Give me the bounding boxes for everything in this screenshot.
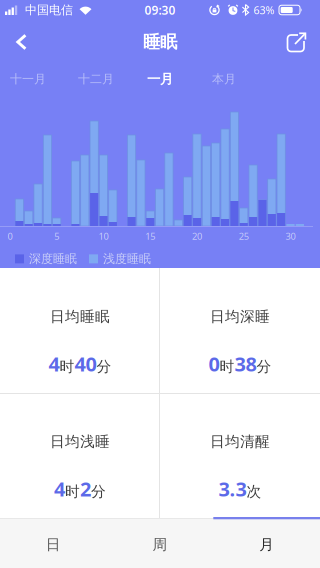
staticText: 10 [98,230,108,242]
staticText: 09:30 [144,2,175,18]
button[interactable]: Share [287,20,320,63]
staticText: 日均浅睡 [50,432,110,450]
staticText: 日 [46,535,61,553]
staticText: 4 [48,350,59,377]
staticText: 分 [91,482,106,500]
staticText: 日均睡眠 [50,307,110,325]
staticText: 十一月 [10,72,46,86]
button[interactable]: 本月 [192,64,256,94]
staticText: 5 [54,230,59,242]
staticText: 中国电信 [25,3,73,17]
button[interactable]: Back [0,20,27,64]
staticText: 40 [74,350,96,377]
staticText: 周 [152,535,167,553]
staticText: 分 [96,357,111,375]
staticText: 时 [65,482,80,500]
staticText: 一月 [147,71,173,87]
staticText: 15 [145,230,155,242]
staticText: 次 [246,482,261,500]
button[interactable]: 日 [0,519,107,568]
button[interactable]: 十二月 [64,64,128,94]
staticText: 时 [219,357,234,375]
button[interactable]: 十一月 [0,64,60,94]
staticText: 25 [239,230,249,242]
staticText: 深度睡眠 [29,251,77,266]
staticText: 浅度睡眠 [103,251,151,266]
staticText: 0 [208,350,219,377]
staticText: 30 [285,230,295,242]
staticText: 2 [80,475,91,502]
staticText: 睡眠 [143,31,177,53]
staticText: 20 [192,230,202,242]
staticText: 月 [259,535,274,553]
staticText: 38 [234,350,256,377]
staticText: 日均清醒 [210,432,270,450]
button[interactable]: 一月 [128,64,192,94]
staticText: 十二月 [78,72,114,86]
staticText: 0 [7,230,12,242]
staticText: 时 [59,357,74,375]
staticText: 分 [256,357,271,375]
staticText: 3.3 [218,475,246,502]
staticText: 本月 [212,72,236,86]
staticText: 日均深睡 [210,307,270,325]
button[interactable]: 周 [107,519,213,568]
staticText: 4 [54,475,65,502]
staticText: 63% [253,3,274,17]
button[interactable]: 月 [213,519,320,568]
